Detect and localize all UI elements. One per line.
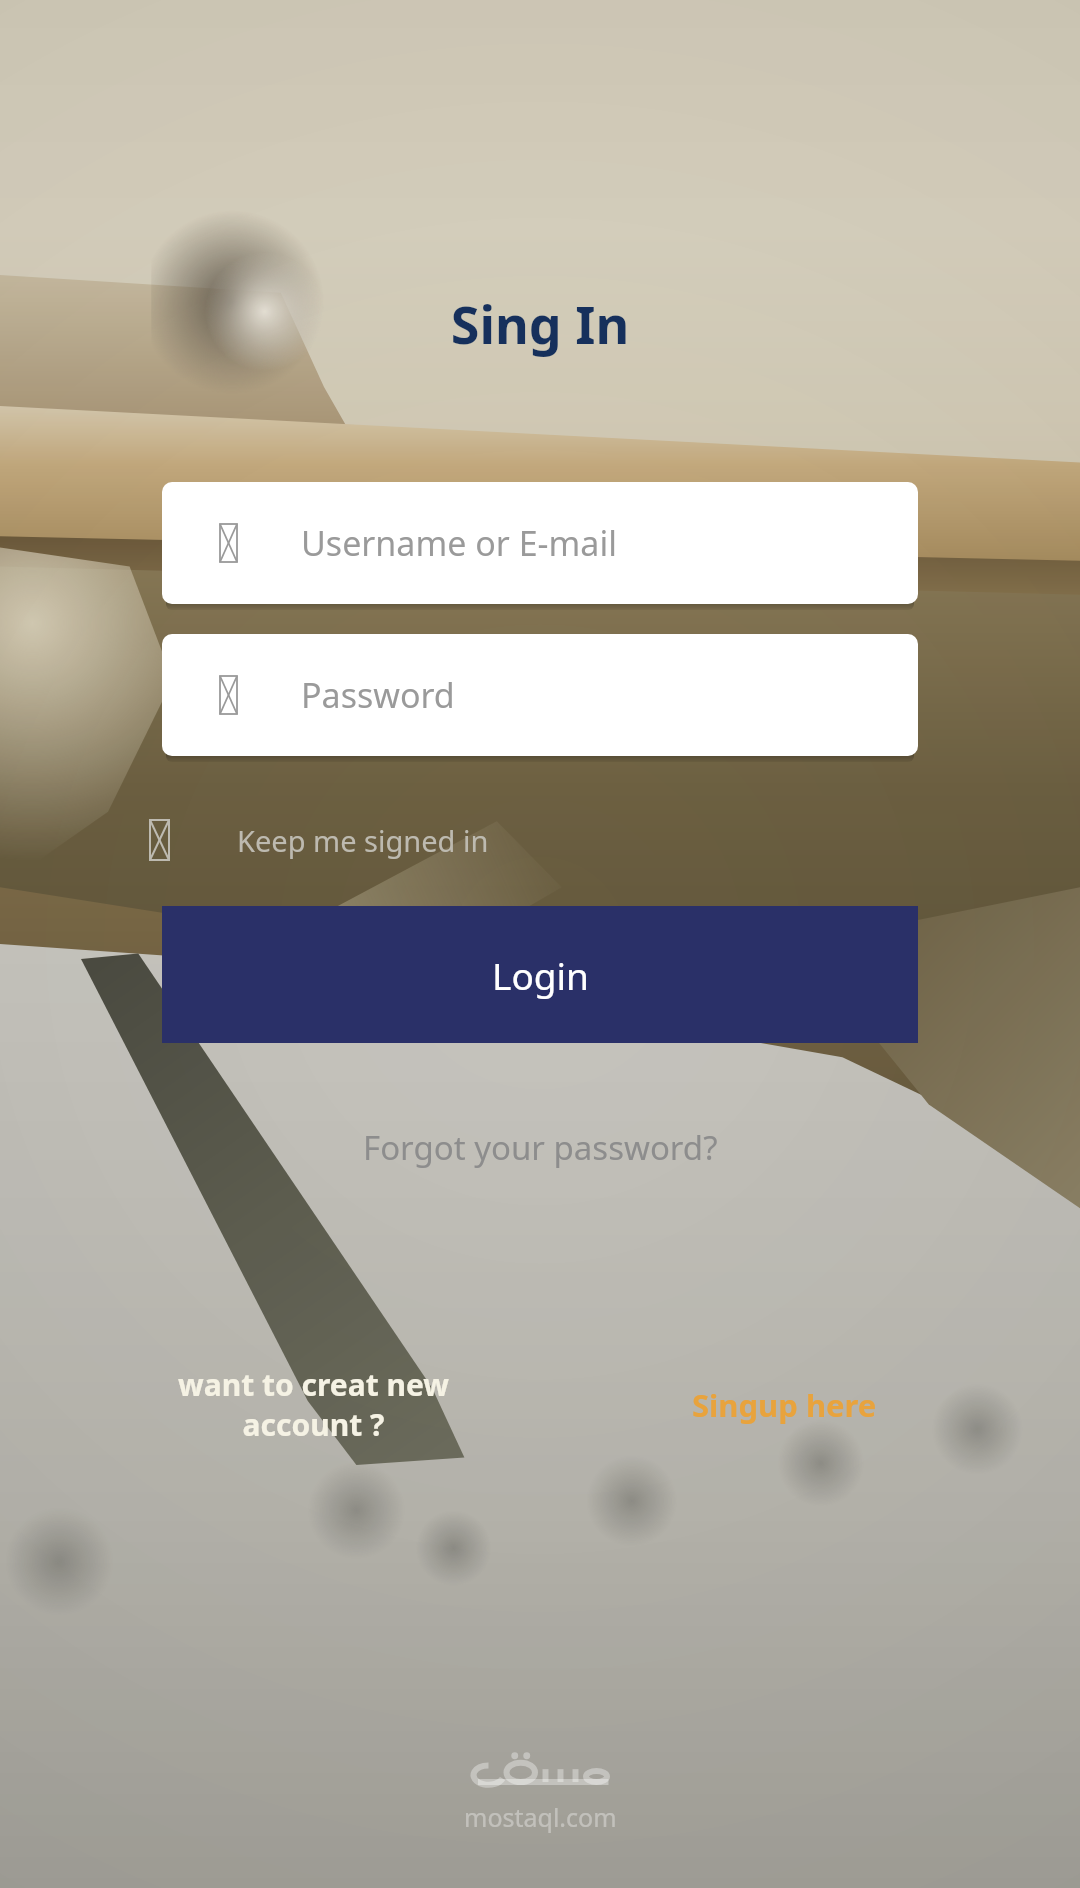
button[interactable]: Login (162, 906, 918, 1043)
staticText: Login (492, 950, 589, 1000)
staticText: Singup here (692, 1384, 877, 1426)
button[interactable]: icon (150, 808, 489, 872)
staticText: Password (301, 672, 455, 718)
staticText: Username or E-mail (301, 520, 617, 566)
other: icon (220, 524, 237, 562)
button[interactable]: Forgot your password? (0, 1115, 1080, 1179)
button[interactable]: icon (162, 634, 918, 756)
button[interactable]: Singup here (549, 1384, 1020, 1426)
staticText: Forgot your password? (363, 1125, 718, 1170)
staticText: Sing In (0, 288, 1080, 359)
other: icon (220, 676, 237, 714)
staticText: mostaql.com (464, 1800, 617, 1834)
staticText: Keep me signed in (237, 821, 489, 860)
button[interactable]: icon (162, 482, 918, 604)
other: icon (150, 820, 169, 860)
staticText: want to creat new account ? (78, 1364, 549, 1445)
